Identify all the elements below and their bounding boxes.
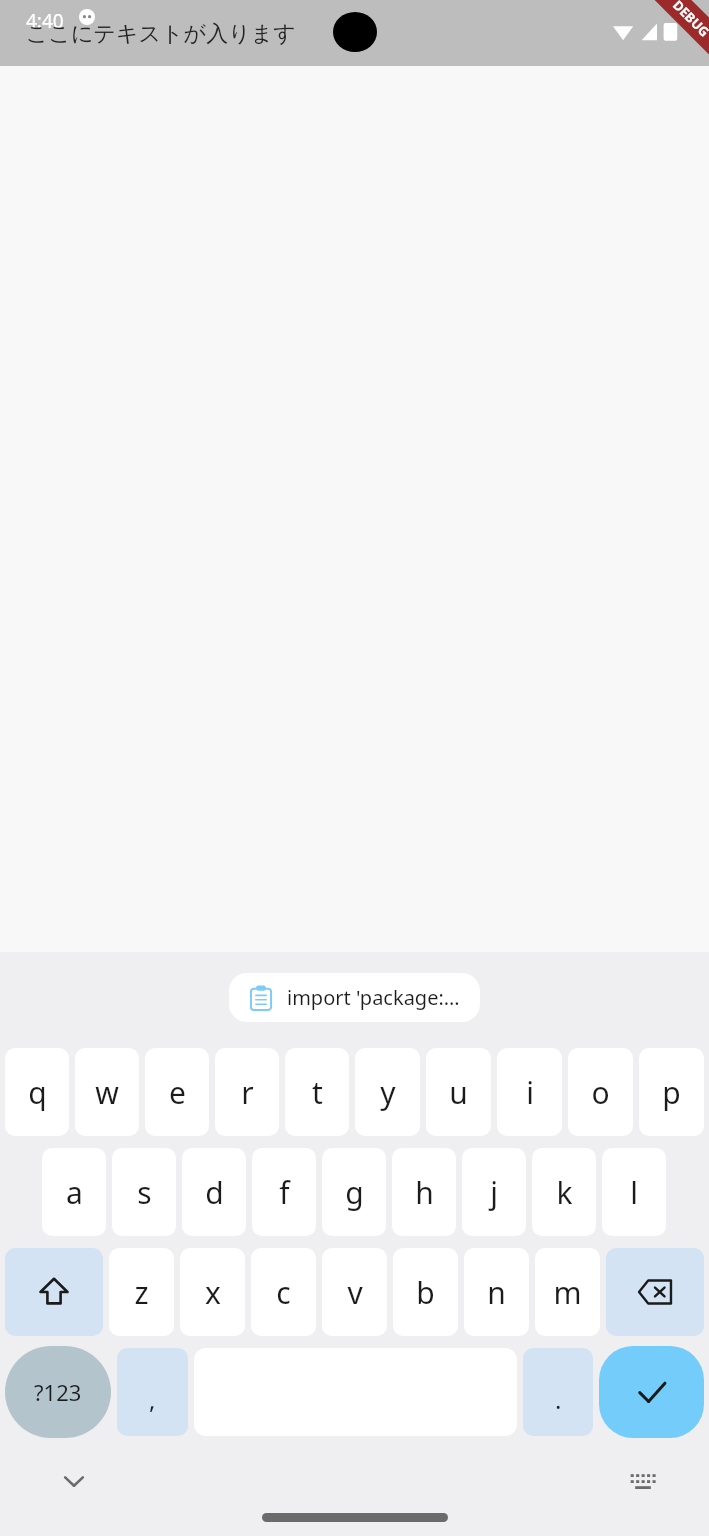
button[interactable]: r (215, 1048, 279, 1136)
staticText: d (205, 1172, 224, 1213)
button[interactable]: ?123 (5, 1346, 111, 1438)
staticText: a (66, 1172, 83, 1213)
staticText: n (487, 1272, 506, 1313)
button[interactable]: f (252, 1148, 316, 1236)
staticText: l (630, 1172, 638, 1213)
staticText: . (555, 1383, 562, 1416)
staticText: f (279, 1172, 290, 1213)
button[interactable]: Hide keyboard (48, 1455, 100, 1507)
button[interactable]: s (112, 1148, 176, 1236)
button[interactable]: . (523, 1348, 593, 1436)
button[interactable]: Change keyboard (617, 1455, 669, 1507)
button[interactable]: , (117, 1348, 188, 1436)
staticText: u (449, 1072, 468, 1113)
button[interactable]: a (42, 1148, 106, 1236)
button[interactable]: b (393, 1248, 458, 1336)
staticText: v (347, 1272, 363, 1313)
staticText: y (380, 1072, 396, 1113)
staticText: h (415, 1172, 434, 1213)
button[interactable]: p (639, 1048, 704, 1136)
button[interactable]: i (497, 1048, 562, 1136)
staticText: g (345, 1172, 364, 1213)
staticText: r (241, 1072, 254, 1113)
button[interactable]: g (322, 1148, 386, 1236)
button[interactable]: h (392, 1148, 456, 1236)
button[interactable]: u (426, 1048, 491, 1136)
staticText: o (591, 1072, 610, 1113)
button[interactable]: e (145, 1048, 209, 1136)
button[interactable]: d (182, 1148, 246, 1236)
staticText: j (490, 1172, 498, 1213)
button[interactable]: c (251, 1248, 316, 1336)
button[interactable]: Enter (599, 1346, 704, 1438)
staticText: t (312, 1072, 323, 1113)
staticText: ここにテキストが入ります (26, 20, 296, 48)
staticText: , (149, 1383, 156, 1416)
staticText: i (526, 1072, 534, 1113)
staticText: 4:40 (26, 8, 64, 34)
staticText: ?123 (34, 1377, 82, 1407)
staticText: q (28, 1072, 47, 1113)
button[interactable]: Backspace (606, 1248, 704, 1336)
button[interactable]: l (602, 1148, 666, 1236)
button[interactable]: m (535, 1248, 600, 1336)
button[interactable]: v (322, 1248, 387, 1336)
button[interactable]: o (568, 1048, 633, 1136)
staticText: w (95, 1072, 119, 1113)
button[interactable]: q (5, 1048, 69, 1136)
button[interactable]: j (462, 1148, 526, 1236)
staticText: p (662, 1072, 681, 1113)
button[interactable]: y (355, 1048, 420, 1136)
button[interactable]: Shift (5, 1248, 103, 1336)
staticText: b (416, 1272, 435, 1313)
button[interactable]: t (285, 1048, 349, 1136)
staticText: k (556, 1172, 573, 1213)
staticText: e (169, 1072, 186, 1113)
staticText: s (137, 1172, 152, 1213)
staticText: x (205, 1272, 221, 1313)
staticText: DEBUG (669, 0, 709, 41)
button[interactable]: n (464, 1248, 529, 1336)
staticText: m (553, 1272, 582, 1313)
staticText: c (276, 1272, 291, 1313)
button[interactable]: import 'package:… (229, 973, 480, 1022)
staticText: import 'package:… (287, 984, 460, 1011)
staticText: z (134, 1272, 149, 1313)
button[interactable]: w (75, 1048, 139, 1136)
button[interactable]: x (180, 1248, 245, 1336)
button[interactable]: z (109, 1248, 174, 1336)
button[interactable]: k (532, 1148, 596, 1236)
